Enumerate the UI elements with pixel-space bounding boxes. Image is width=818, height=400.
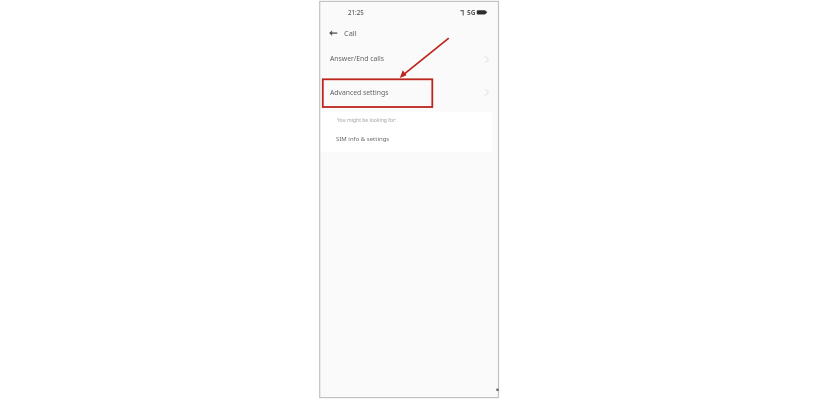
staticText: Answer/End calls: [330, 54, 385, 63]
button[interactable]: Advanced settings: [320, 80, 498, 106]
staticText: SIM info & settings: [336, 135, 390, 143]
button[interactable]: SIM info & settings: [320, 129, 492, 152]
button[interactable]: Answer/End calls: [320, 47, 498, 73]
staticText: You might be looking for:: [337, 117, 397, 124]
button[interactable]: Back: [326, 26, 343, 43]
staticText: Advanced settings: [330, 88, 389, 97]
staticText: Call: [344, 28, 357, 38]
staticText: 21:25: [348, 8, 364, 16]
staticText: 5G: [467, 8, 476, 17]
